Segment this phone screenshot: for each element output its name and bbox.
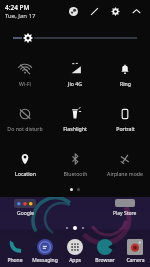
button[interactable]: Jio 4G [50,55,100,99]
button[interactable]: Google [0,198,50,220]
staticText: Flashlight [63,125,87,132]
staticText: Tue, Jan 17 [5,12,36,20]
staticText: Bluetooth [63,170,88,177]
button[interactable]: Brightness [0,30,150,46]
staticText: Messaging [32,257,58,264]
button[interactable]: Play Store [100,198,150,220]
staticText: Apps [69,257,81,264]
staticText: Airplane mode [107,170,143,177]
staticText: Jio 4G [68,80,82,87]
staticText: Wi-Fi [19,80,31,87]
button[interactable]: Wi-Fi [0,55,50,99]
button[interactable]: Camera [120,237,150,267]
button[interactable]: Portrait [100,100,150,144]
button[interactable]: Flashlight [50,100,100,144]
button[interactable]: Apps [60,237,90,267]
button[interactable]: Airplane mode [100,145,150,189]
button[interactable]: Do not disturb [0,100,50,144]
button[interactable]: Collapse [128,3,144,19]
button[interactable]: Edit [86,3,102,19]
staticText: Play Store [113,210,137,217]
button[interactable]: Messaging [30,237,60,267]
staticText: Do not disturb [7,125,43,132]
button[interactable]: Ring [100,55,150,99]
staticText: Location [15,170,36,177]
staticText: Browser [95,257,115,264]
button[interactable]: Location [0,145,50,189]
button[interactable]: Browser [90,237,120,267]
button[interactable]: Bluetooth [50,145,100,189]
button[interactable]: Phone [0,237,30,267]
button[interactable]: Settings [107,3,123,19]
staticText: Google [17,210,34,217]
staticText: Ring [120,80,131,87]
staticText: Camera [126,257,145,264]
button[interactable]: User [65,3,81,19]
staticText: Phone [7,257,23,264]
staticText: 4:24 PM [5,3,30,12]
staticText: Portrait [116,125,135,132]
